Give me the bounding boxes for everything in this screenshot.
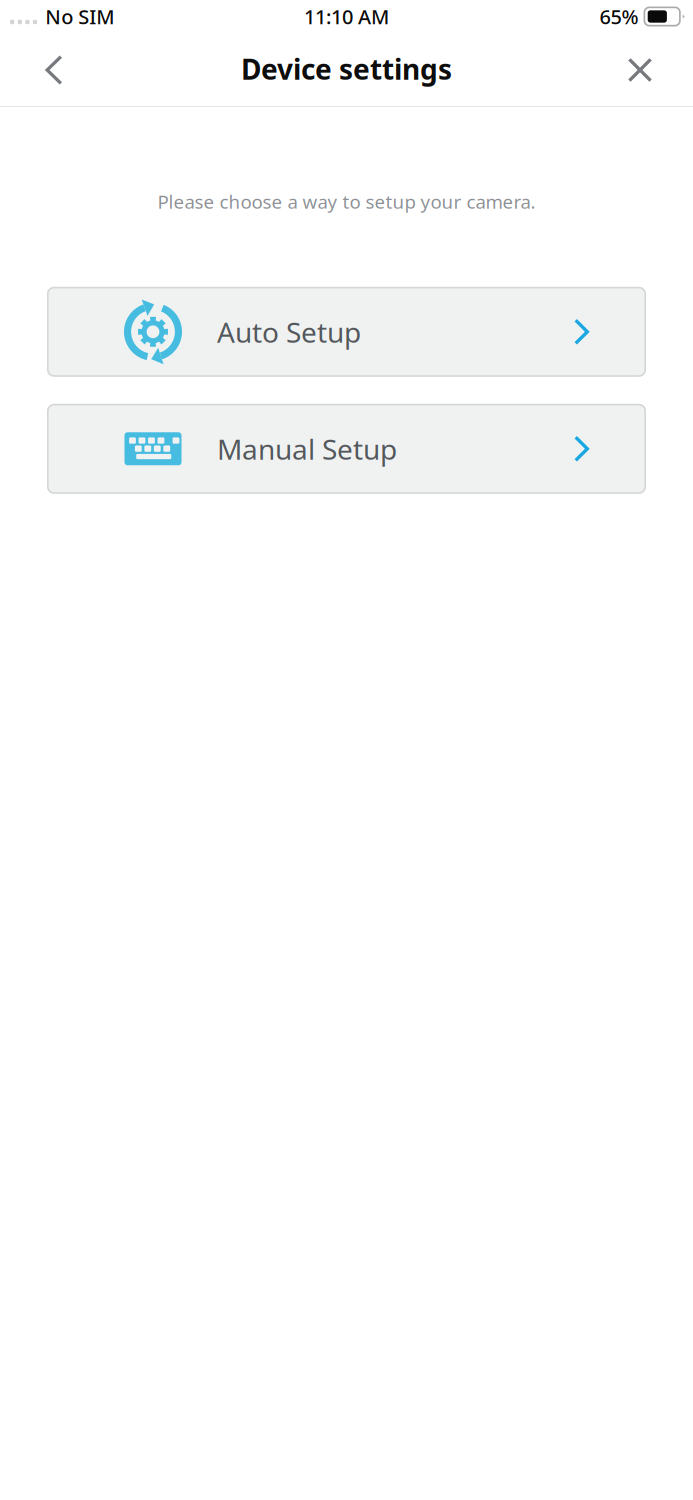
button[interactable]: Auto Setup — [47, 287, 646, 377]
staticText: Auto Setup — [217, 313, 361, 350]
staticText: 65% — [599, 3, 638, 30]
staticText: No SIM — [45, 3, 114, 30]
button[interactable]: Back — [25, 41, 83, 99]
button[interactable]: Close — [611, 41, 669, 99]
button[interactable]: Manual Setup — [47, 404, 646, 494]
staticText: Device settings — [241, 50, 452, 88]
staticText: Manual Setup — [217, 430, 397, 467]
staticText: Please choose a way to setup your camera… — [157, 189, 535, 214]
staticText: 11:10 AM — [304, 3, 389, 30]
